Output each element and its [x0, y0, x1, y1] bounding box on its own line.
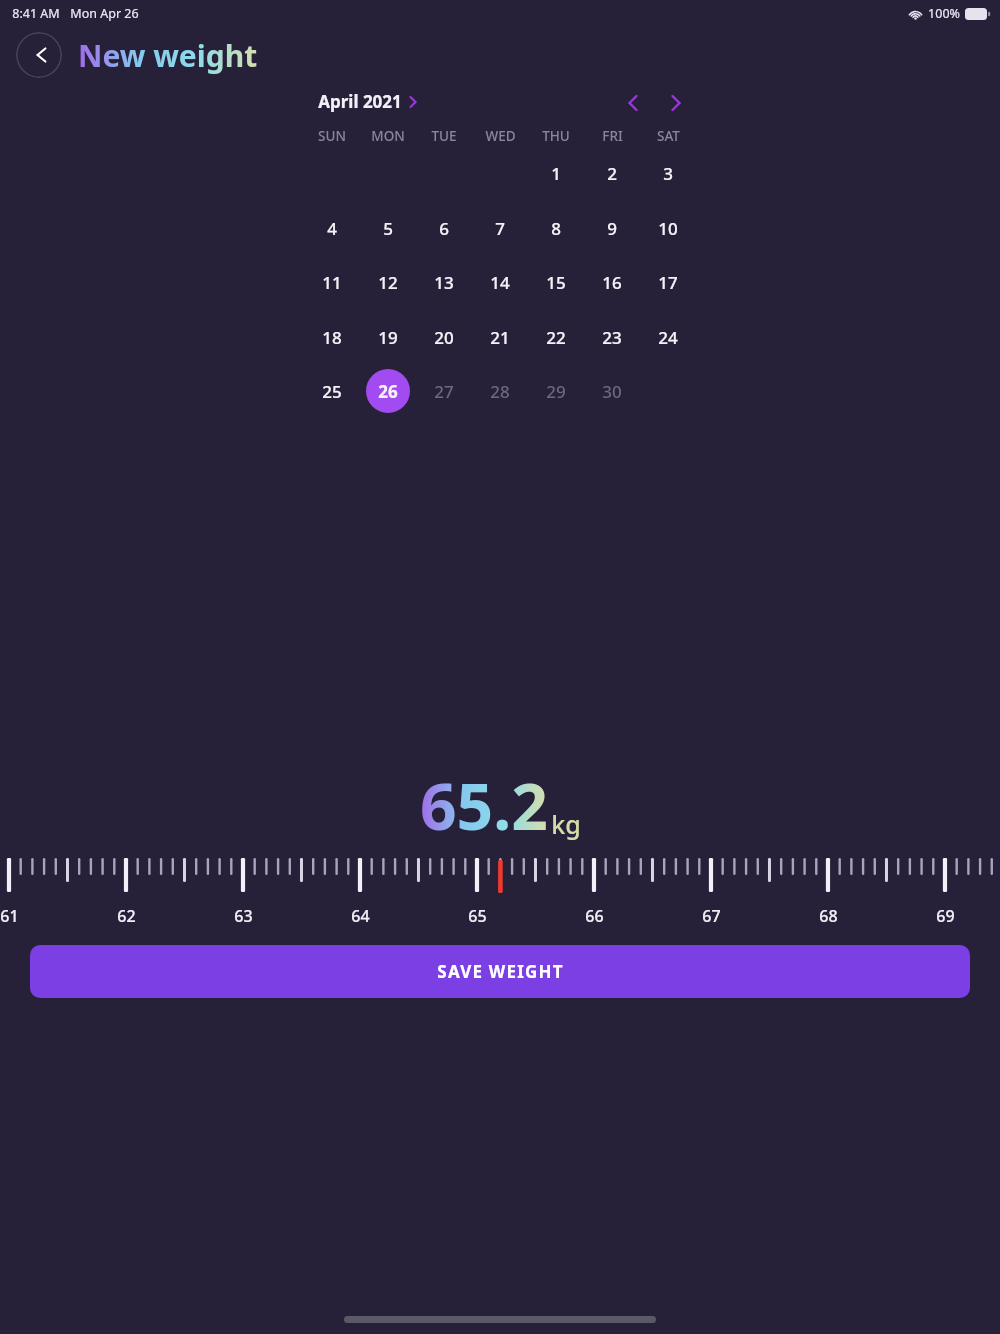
staticText: 2: [607, 162, 617, 185]
button[interactable]: Back: [16, 32, 62, 78]
button[interactable]: 26: [366, 369, 410, 413]
staticText: 28: [490, 380, 510, 403]
button[interactable]: April 2021: [318, 90, 420, 113]
staticText: SUN: [318, 127, 346, 145]
staticText: 9: [607, 217, 617, 240]
staticText: 4: [327, 217, 337, 240]
staticText: 11: [322, 271, 342, 294]
staticText: New weight: [78, 35, 258, 76]
staticText: 16: [602, 271, 622, 294]
staticText: MON: [371, 127, 405, 145]
button[interactable]: 21: [478, 315, 522, 359]
staticText: THU: [542, 127, 570, 145]
button[interactable]: 13: [422, 260, 466, 304]
button[interactable]: 10: [646, 206, 690, 250]
button[interactable]: 20: [422, 315, 466, 359]
staticText: kg: [551, 807, 581, 841]
staticText: 8: [551, 217, 561, 240]
staticText: 24: [658, 326, 678, 349]
button[interactable]: Previous month: [616, 86, 650, 120]
button[interactable]: 5: [366, 206, 410, 250]
staticText: 17: [658, 271, 678, 294]
button[interactable]: SAVE WEIGHT: [30, 945, 970, 998]
staticText: 26: [378, 380, 398, 403]
button[interactable]: 3: [646, 151, 690, 195]
staticText: Mon Apr 26: [70, 5, 139, 22]
button[interactable]: 8: [534, 206, 578, 250]
staticText: 7: [495, 217, 505, 240]
button[interactable]: 11: [310, 260, 354, 304]
button[interactable]: 28: [478, 369, 522, 413]
button[interactable]: 23: [590, 315, 634, 359]
staticText: 65.2: [420, 762, 548, 849]
staticText: 29: [546, 380, 566, 403]
staticText: 8:41 AM: [12, 5, 60, 22]
button[interactable]: 22: [534, 315, 578, 359]
staticText: 12: [378, 271, 398, 294]
staticText: 1: [551, 162, 561, 185]
staticText: 6: [439, 217, 449, 240]
staticText: 25: [322, 380, 342, 403]
staticText: 63: [234, 905, 253, 927]
button[interactable]: Next month: [659, 86, 693, 120]
button[interactable]: 12: [366, 260, 410, 304]
staticText: SAVE WEIGHT: [437, 960, 564, 983]
staticText: 13: [434, 271, 454, 294]
staticText: WED: [485, 127, 516, 145]
button[interactable]: 4: [310, 206, 354, 250]
button[interactable]: 14: [478, 260, 522, 304]
staticText: 5: [383, 217, 393, 240]
staticText: 69: [936, 905, 955, 927]
staticText: SAT: [657, 127, 680, 145]
button[interactable]: 15: [534, 260, 578, 304]
button[interactable]: 16: [590, 260, 634, 304]
staticText: 62: [117, 905, 136, 927]
staticText: 67: [702, 905, 721, 927]
button[interactable]: 25: [310, 369, 354, 413]
staticText: 14: [490, 271, 510, 294]
staticText: 23: [602, 326, 622, 349]
staticText: 20: [434, 326, 454, 349]
button[interactable]: 19: [366, 315, 410, 359]
button[interactable]: 24: [646, 315, 690, 359]
button[interactable]: 18: [310, 315, 354, 359]
staticText: 61: [0, 905, 19, 927]
button[interactable]: 7: [478, 206, 522, 250]
button[interactable]: 30: [590, 369, 634, 413]
staticText: 30: [602, 380, 622, 403]
button[interactable]: 1: [534, 151, 578, 195]
staticText: 100%: [928, 5, 960, 22]
button[interactable]: 2: [590, 151, 634, 195]
staticText: 10: [658, 217, 678, 240]
staticText: 27: [434, 380, 454, 403]
staticText: FRI: [602, 127, 623, 145]
staticText: 22: [546, 326, 566, 349]
staticText: 3: [663, 162, 673, 185]
staticText: 18: [322, 326, 342, 349]
staticText: TUE: [431, 127, 457, 145]
button[interactable]: 29: [534, 369, 578, 413]
staticText: 65: [468, 905, 487, 927]
button[interactable]: 27: [422, 369, 466, 413]
staticText: 21: [490, 326, 510, 349]
staticText: 19: [378, 326, 398, 349]
button[interactable]: 17: [646, 260, 690, 304]
staticText: 64: [351, 905, 370, 927]
button[interactable]: 9: [590, 206, 634, 250]
staticText: 15: [546, 271, 566, 294]
staticText: April 2021: [318, 90, 402, 113]
button[interactable]: 6: [422, 206, 466, 250]
staticText: 66: [585, 905, 604, 927]
staticText: 68: [819, 905, 838, 927]
